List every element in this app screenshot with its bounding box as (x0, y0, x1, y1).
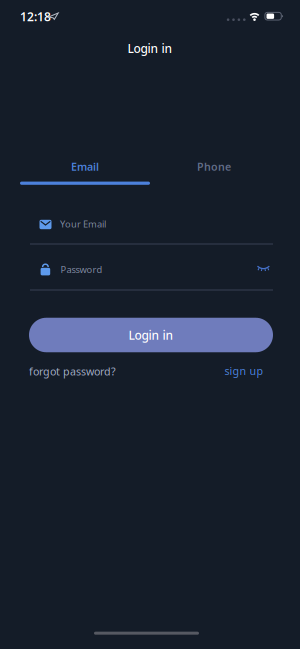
staticText: Email (71, 159, 99, 174)
button[interactable]: forgot password? (0, 364, 300, 378)
staticText: sign up (224, 364, 263, 378)
staticText: Password (60, 263, 102, 276)
button[interactable]: Email (20, 152, 150, 180)
staticText: Phone (197, 159, 231, 174)
staticText: Your Email (60, 218, 106, 230)
staticText: 12:18 (20, 9, 51, 24)
button[interactable]: Login in (29, 318, 273, 352)
button[interactable]: Phone (149, 152, 279, 180)
staticText: Login in (127, 40, 172, 56)
button[interactable] (257, 265, 270, 271)
staticText: forgot password? (29, 364, 116, 378)
button[interactable]: sign up (0, 364, 300, 378)
staticText: Login in (128, 327, 173, 343)
